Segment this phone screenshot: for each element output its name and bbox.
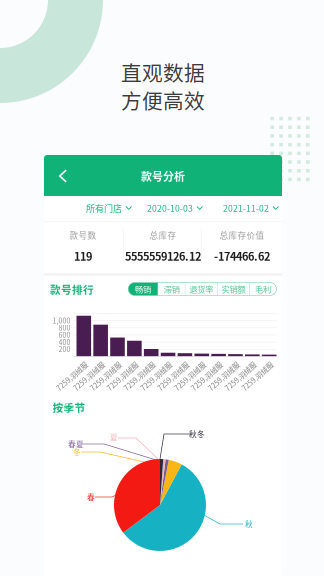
staticText: 7259,羽绒服 xyxy=(137,371,176,381)
button[interactable]: 滞销 xyxy=(158,282,185,295)
staticText: 7259,羽绒服 xyxy=(187,371,226,381)
staticText: 5555559126.12 xyxy=(125,248,201,264)
staticText: 春 xyxy=(87,491,95,503)
staticText: 冬 xyxy=(73,446,81,458)
staticText: 所有门店 xyxy=(86,201,122,214)
button[interactable]: Back xyxy=(50,163,76,189)
staticText: 119 xyxy=(74,248,92,264)
staticText: 7259,羽绒服 xyxy=(103,371,142,381)
button[interactable]: 退货率 xyxy=(185,282,217,295)
staticText: 按季节 xyxy=(52,399,85,415)
staticText: 1,000 xyxy=(52,315,70,325)
staticText: 畅销 xyxy=(135,283,151,295)
staticText: 秋 xyxy=(245,518,253,530)
staticText: 600 xyxy=(58,330,70,340)
staticText: 7259,羽绒服 xyxy=(52,371,91,381)
staticText: 实销额 xyxy=(221,283,245,295)
staticText: 春夏 xyxy=(68,438,84,450)
staticText: -174466.62 xyxy=(214,248,270,264)
button[interactable]: 2021-11-02 xyxy=(218,197,284,219)
staticText: 总库存 xyxy=(149,229,176,241)
staticText: 2020-10-03 xyxy=(147,202,193,214)
staticText: 直观数据 xyxy=(121,57,205,87)
staticText: 7259,羽绒服 xyxy=(154,371,193,381)
staticText: 款号分析 xyxy=(141,168,185,184)
staticText: 滞销 xyxy=(164,283,180,295)
staticText: 800 xyxy=(58,322,70,332)
button[interactable]: 实销额 xyxy=(218,282,249,295)
staticText: 7259,羽绒服 xyxy=(69,371,108,381)
button[interactable]: 毛利 xyxy=(250,282,276,295)
staticText: 款号数 xyxy=(69,229,96,241)
staticText: 夏 xyxy=(110,431,118,443)
button[interactable]: 畅销 xyxy=(128,282,158,295)
staticText: 款号排行 xyxy=(50,281,94,297)
staticText: 毛利 xyxy=(255,283,271,295)
staticText: 7259,羽绒服 xyxy=(120,371,159,381)
staticText: 400 xyxy=(58,337,70,347)
staticText: 2021-11-02 xyxy=(223,202,269,214)
staticText: 秋冬 xyxy=(189,428,205,440)
button[interactable]: 2020-10-03 xyxy=(142,197,208,219)
staticText: 7259,羽绒服 xyxy=(204,371,243,381)
staticText: 方便高效 xyxy=(121,85,205,115)
staticText: 7259,羽绒服 xyxy=(221,371,260,381)
staticText: 200 xyxy=(58,344,70,354)
staticText: 7259,羽绒服 xyxy=(238,371,277,381)
button[interactable]: 所有门店 xyxy=(81,196,137,219)
staticText: 7259,羽绒服 xyxy=(86,371,125,381)
staticText: 退货率 xyxy=(189,283,213,295)
staticText: 总库存价值 xyxy=(219,229,264,241)
staticText: 7259,羽绒服 xyxy=(170,371,209,381)
